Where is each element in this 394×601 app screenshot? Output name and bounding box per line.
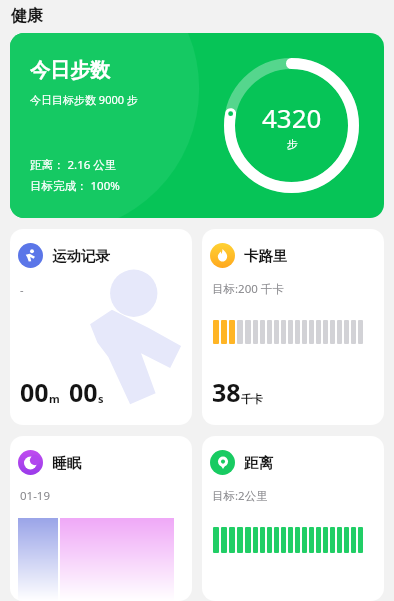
staticText: 千卡 xyxy=(241,392,263,406)
button[interactable]: 距离 xyxy=(202,436,384,601)
button[interactable]: 运动记录 xyxy=(10,229,192,425)
staticText: 距离 xyxy=(244,454,273,472)
staticText: 今日步数 xyxy=(30,58,110,83)
staticText: 目标:2公里 xyxy=(212,488,268,504)
staticText: 00 xyxy=(20,375,49,409)
staticText: 距离： 2.16 公里 xyxy=(30,157,117,173)
staticText: 01-19 xyxy=(20,488,51,504)
staticText: 目标:200 千卡 xyxy=(212,281,284,297)
staticText: 今日目标步数 9000 步 xyxy=(30,92,138,107)
staticText: 38 xyxy=(212,375,241,409)
staticText: 睡眠 xyxy=(52,454,81,472)
staticText: 步 xyxy=(287,137,298,151)
staticText: 目标完成： 100% xyxy=(30,178,120,194)
staticText: 卡路里 xyxy=(244,247,288,265)
staticText: 00 xyxy=(69,375,98,409)
staticText: 运动记录 xyxy=(52,247,110,265)
staticText: 4320 xyxy=(262,100,322,135)
staticText: 健康 xyxy=(11,6,43,26)
button[interactable]: 卡路里 xyxy=(202,229,384,425)
staticText: - xyxy=(20,282,24,297)
button[interactable]: 今日步数 xyxy=(10,33,384,218)
staticText: s xyxy=(98,391,104,406)
staticText: m xyxy=(49,391,60,406)
button[interactable]: 睡眠 xyxy=(10,436,192,601)
